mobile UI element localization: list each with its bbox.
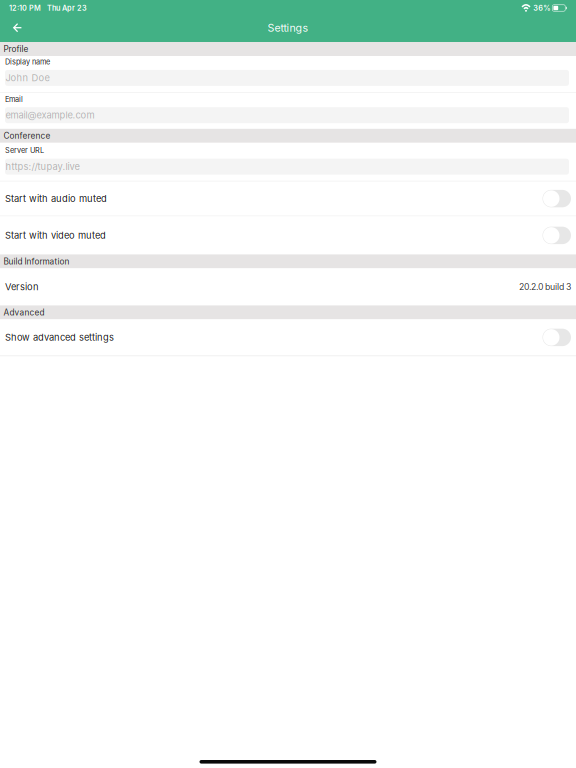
button[interactable]: Show advanced settings xyxy=(0,319,576,355)
staticText: Show advanced settings xyxy=(5,332,114,343)
staticText: Email xyxy=(5,95,23,104)
staticText: 20.2.0 build 3 xyxy=(519,282,571,292)
staticText: Thu Apr 23 xyxy=(47,4,87,12)
staticText: Server URL xyxy=(5,146,44,155)
staticText: Display name xyxy=(5,57,50,66)
staticText: Start with audio muted xyxy=(5,193,107,204)
button[interactable]: Back xyxy=(2,16,32,42)
staticText: Profile xyxy=(3,44,28,54)
staticText: Settings xyxy=(267,21,308,34)
button[interactable]: Start with video muted xyxy=(0,216,576,254)
staticText: 36% xyxy=(533,4,550,12)
staticText: Build Information xyxy=(3,256,69,266)
staticText: Advanced xyxy=(3,307,44,317)
staticText: Start with video muted xyxy=(5,230,106,241)
staticText: https://tupay.live xyxy=(5,161,79,172)
button[interactable]: Start with audio muted xyxy=(0,182,576,216)
staticText: John Doe xyxy=(5,72,49,83)
staticText: 12:10 PM xyxy=(9,4,41,12)
staticText: email@example.com xyxy=(5,109,94,121)
staticText: Conference xyxy=(3,131,50,141)
staticText: Version xyxy=(5,281,39,293)
